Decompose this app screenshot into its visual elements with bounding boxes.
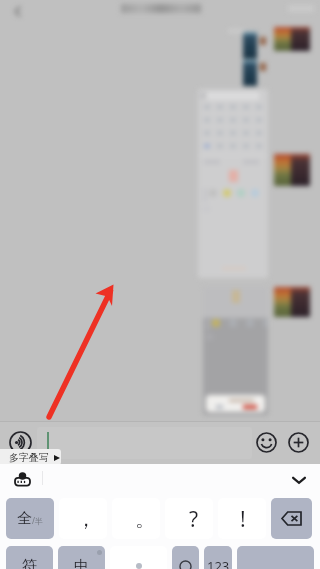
staticText: 多字叠写 <box>9 451 49 464</box>
button[interactable]: 123 <box>204 546 232 569</box>
button[interactable] <box>203 287 268 415</box>
button[interactable] <box>110 546 167 569</box>
button[interactable]: 中 <box>58 546 105 569</box>
staticText: ! <box>240 505 246 534</box>
staticText: 123 <box>207 557 230 569</box>
button[interactable]: 。 <box>112 498 160 539</box>
button[interactable] <box>198 89 268 278</box>
button[interactable] <box>274 154 310 186</box>
staticText: 全 <box>17 509 32 528</box>
staticText: ， <box>76 507 96 532</box>
button[interactable]: Back <box>8 2 26 20</box>
button[interactable]: Voice input <box>7 429 33 455</box>
button[interactable]: ! <box>218 498 266 539</box>
button[interactable] <box>271 498 312 539</box>
staticText: 符 <box>22 557 37 569</box>
button[interactable]: ， <box>59 498 107 539</box>
button[interactable]: 多字叠写 <box>0 449 61 465</box>
button[interactable]: Hide keyboard <box>288 469 310 491</box>
button[interactable]: More functions <box>286 430 311 455</box>
button[interactable]: Switch input method <box>11 468 33 490</box>
button[interactable] <box>37 427 252 459</box>
staticText: 。 <box>135 507 155 532</box>
staticText: 中 <box>74 557 89 569</box>
button[interactable]: 全 <box>6 498 54 539</box>
button[interactable]: Emoji <box>254 430 279 455</box>
staticText: ? <box>189 505 199 534</box>
staticText: /半 <box>32 515 43 526</box>
button[interactable] <box>237 546 314 569</box>
button[interactable]: ? <box>165 498 213 539</box>
button[interactable] <box>274 287 310 317</box>
button[interactable]: 符 <box>6 546 53 569</box>
button[interactable] <box>172 546 199 569</box>
button[interactable] <box>274 27 310 51</box>
